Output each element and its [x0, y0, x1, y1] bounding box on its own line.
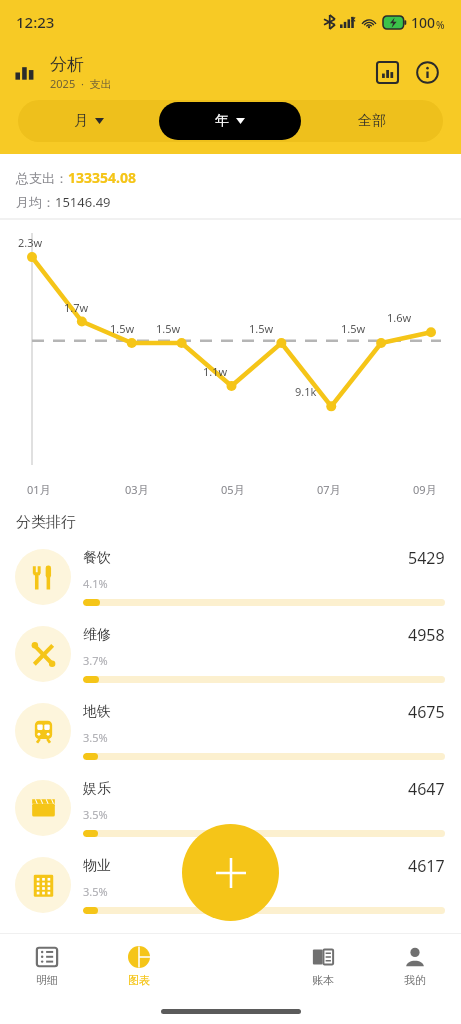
staticText: 1.5w: [156, 321, 181, 336]
button[interactable]: 地铁: [0, 692, 461, 769]
staticText: 年: [215, 112, 229, 130]
staticText: 1.5w: [341, 321, 366, 336]
staticText: 分析: [50, 54, 84, 75]
staticText: 物业: [83, 857, 408, 875]
staticText: 我的: [404, 973, 426, 987]
staticText: 2025 · 支出: [50, 76, 112, 91]
staticText: 5429: [408, 547, 445, 569]
button[interactable]: 明细: [0, 934, 93, 998]
button[interactable]: 图表: [93, 934, 185, 998]
staticText: 05月: [221, 482, 245, 497]
button[interactable]: Info: [407, 52, 447, 92]
staticText: 1.7w: [64, 300, 89, 315]
staticText: 分类排行: [16, 513, 76, 532]
staticText: 图表: [128, 973, 150, 987]
staticText: 4958: [408, 624, 445, 646]
button[interactable]: 餐饮: [0, 538, 461, 615]
staticText: 1.5w: [110, 321, 135, 336]
button[interactable]: Add: [182, 824, 279, 921]
button[interactable]: 物业: [0, 846, 461, 923]
button[interactable]: 月: [18, 100, 159, 142]
button[interactable]: 全部: [301, 100, 443, 142]
staticText: 地铁: [83, 703, 408, 721]
staticText: 1.6w: [387, 310, 412, 325]
staticText: 账本: [312, 973, 334, 987]
staticText: 100: [411, 13, 436, 32]
button[interactable]: 账本: [277, 934, 369, 998]
staticText: 1.1w: [203, 364, 228, 379]
staticText: 3.7%: [83, 653, 108, 668]
staticText: 月: [74, 112, 88, 130]
staticText: 3.5%: [83, 884, 108, 899]
staticText: %: [436, 18, 445, 32]
staticText: 09月: [413, 482, 437, 497]
button[interactable]: 我的: [369, 934, 461, 998]
staticText: 4617: [408, 855, 445, 877]
button[interactable]: 娱乐: [0, 769, 461, 846]
staticText: 总支出：: [16, 170, 68, 186]
staticText: 03月: [125, 482, 149, 497]
staticText: 明细: [36, 973, 58, 987]
staticText: 133354.08: [68, 168, 136, 187]
staticText: 01月: [27, 482, 51, 497]
staticText: 月均：: [16, 194, 55, 210]
staticText: 3.5%: [83, 730, 108, 745]
staticText: 07月: [317, 482, 341, 497]
staticText: 维修: [83, 626, 408, 644]
staticText: 娱乐: [83, 780, 408, 798]
staticText: 全部: [358, 112, 386, 130]
button[interactable]: Chart type: [367, 52, 407, 92]
staticText: 4.1%: [83, 576, 108, 591]
button[interactable]: 年: [159, 102, 301, 140]
staticText: 2.3w: [18, 235, 43, 250]
staticText: 3.5%: [83, 807, 108, 822]
staticText: 1.5w: [249, 321, 274, 336]
button[interactable]: 维修: [0, 615, 461, 692]
staticText: 4675: [408, 701, 445, 723]
staticText: 9.1k: [295, 384, 317, 399]
staticText: 12:23: [16, 12, 55, 32]
staticText: 餐饮: [83, 549, 408, 567]
staticText: 15146.49: [55, 193, 111, 211]
staticText: 4647: [408, 778, 445, 800]
